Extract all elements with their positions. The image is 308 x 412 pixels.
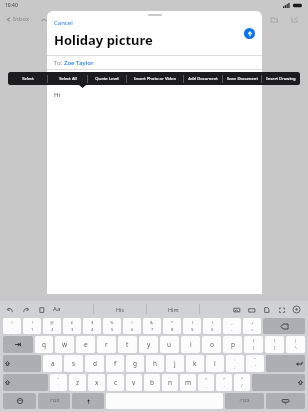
button[interactable]: o — [202, 336, 221, 353]
button[interactable]: Him — [147, 306, 199, 313]
button[interactable]: u — [160, 336, 179, 353]
button[interactable]: Tab — [3, 336, 33, 353]
button[interactable]: r — [97, 336, 116, 353]
button[interactable]: Inbox — [5, 15, 31, 23]
button[interactable]: f — [106, 355, 124, 372]
button[interactable]: k — [186, 355, 204, 372]
button[interactable]: : — [226, 355, 244, 372]
staticText: Select — [22, 76, 34, 82]
button[interactable]: Backspace — [263, 318, 305, 334]
button[interactable]: * — [163, 318, 181, 334]
button[interactable]: Quote Level — [88, 72, 126, 85]
button[interactable]: Shift — [3, 374, 48, 391]
button[interactable]: } — [265, 336, 284, 353]
button[interactable]: .?123 alternate — [225, 393, 264, 409]
button[interactable]: & — [143, 318, 161, 334]
button[interactable]: < — [198, 374, 214, 391]
button[interactable]: Shift — [3, 355, 41, 372]
button[interactable]: s — [64, 355, 83, 372]
button[interactable]: x — [88, 374, 105, 391]
button[interactable]: Scan document — [276, 304, 287, 315]
button[interactable]: c — [107, 374, 124, 391]
button[interactable]: Insert Drawing — [262, 72, 300, 85]
button[interactable]: ! — [23, 318, 41, 334]
staticText: ' — [255, 364, 256, 370]
staticText: ) — [212, 320, 214, 326]
button[interactable]: _ — [223, 318, 241, 334]
button[interactable]: Compose — [289, 14, 300, 25]
button[interactable]: q — [35, 336, 53, 353]
button[interactable]: ( — [183, 318, 201, 334]
button[interactable]: Insert Photo or Video — [127, 72, 183, 85]
button[interactable]: Undo — [4, 304, 15, 315]
button[interactable]: ~ — [50, 374, 67, 391]
button[interactable]: + — [243, 318, 261, 334]
button[interactable]: His — [94, 306, 146, 313]
button[interactable]: Cc/Bcc, From: a@ — [54, 70, 262, 83]
button[interactable]: Move to folder — [269, 14, 280, 25]
button[interactable]: i — [181, 336, 200, 353]
button[interactable]: b — [144, 374, 160, 391]
button[interactable]: Aa — [52, 305, 62, 313]
button[interactable]: | — [286, 336, 305, 353]
button[interactable]: Dictate — [72, 393, 104, 409]
button[interactable]: a — [43, 355, 62, 372]
button[interactable]: y — [139, 336, 158, 353]
button[interactable]: l — [206, 355, 224, 372]
staticText: Add Document — [188, 76, 218, 82]
staticText: : — [234, 357, 236, 363]
button[interactable]: Emoji — [3, 393, 36, 409]
button[interactable]: w — [55, 336, 74, 353]
button[interactable]: Hide keyboard — [291, 304, 302, 315]
button[interactable]: v — [126, 374, 142, 391]
button[interactable]: Add document — [261, 304, 272, 315]
staticText: q — [42, 340, 46, 349]
button[interactable]: ? — [234, 374, 250, 391]
staticText: r — [105, 340, 108, 349]
button[interactable]: d — [85, 355, 104, 372]
button[interactable]: Cancel — [54, 19, 73, 27]
button[interactable]: h — [146, 355, 164, 372]
staticText: " — [254, 357, 256, 363]
button[interactable]: " — [246, 355, 264, 372]
button[interactable]: Insert photo — [231, 304, 242, 315]
button[interactable]: Shift — [252, 374, 305, 391]
button[interactable]: Take photo — [246, 304, 257, 315]
button[interactable]: % — [103, 318, 121, 334]
button[interactable]: .?123 — [38, 393, 70, 409]
other: Shift — [3, 374, 48, 391]
button[interactable]: Next message — [55, 15, 64, 24]
button[interactable]: j — [166, 355, 184, 372]
staticText: Him — [168, 306, 179, 313]
button[interactable]: t — [118, 336, 137, 353]
button[interactable]: Select All — [48, 72, 87, 85]
staticText: To: — [54, 59, 64, 67]
button[interactable]: @ — [43, 318, 61, 334]
button[interactable]: p — [223, 336, 242, 353]
button[interactable]: Select — [8, 72, 47, 85]
staticText: 10:40 — [5, 2, 18, 9]
button[interactable]: Send — [244, 28, 255, 39]
button[interactable]: Add Document — [184, 72, 222, 85]
button[interactable]: m — [180, 374, 196, 391]
button[interactable]: ) — [203, 318, 221, 334]
button[interactable]: Return — [266, 355, 305, 372]
button[interactable]: > — [216, 374, 232, 391]
button[interactable]: Scan Document — [223, 72, 261, 85]
button[interactable]: ^ — [3, 318, 21, 334]
button[interactable]: Previous message — [39, 15, 48, 24]
button[interactable]: £ — [63, 318, 81, 334]
button[interactable]: Paste — [36, 304, 47, 315]
button[interactable]: Hide keyboard — [266, 393, 305, 409]
staticText: .?123 — [49, 398, 60, 404]
button[interactable]: z — [69, 374, 86, 391]
button[interactable]: e — [76, 336, 95, 353]
button[interactable]: ^ — [123, 318, 141, 334]
button[interactable]: { — [244, 336, 263, 353]
button[interactable]: n — [162, 374, 178, 391]
button[interactable]: Redo — [20, 304, 31, 315]
button[interactable]: g — [126, 355, 144, 372]
button[interactable]: $ — [83, 318, 101, 334]
